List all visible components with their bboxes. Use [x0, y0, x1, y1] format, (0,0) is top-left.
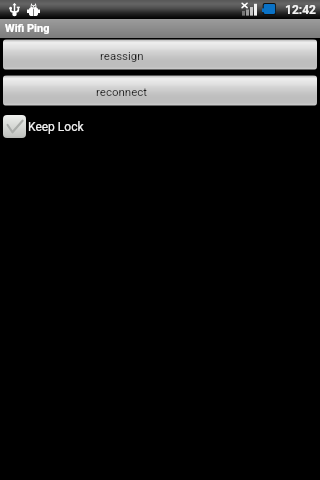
other: Battery [262, 3, 276, 15]
other: USB connected [9, 3, 20, 16]
button[interactable]: reassign [3, 39, 317, 70]
staticText: Wifi Ping [5, 22, 50, 35]
staticText: reconnect [96, 85, 148, 98]
other: No signal [241, 3, 257, 16]
staticText: reassign [100, 49, 144, 62]
staticText: 12:42 [285, 3, 316, 17]
button[interactable]: reconnect [3, 75, 317, 106]
staticText: Keep Lock [28, 120, 84, 134]
button[interactable]: Keep Lock [0, 113, 320, 140]
other: USB debugging [27, 3, 40, 16]
